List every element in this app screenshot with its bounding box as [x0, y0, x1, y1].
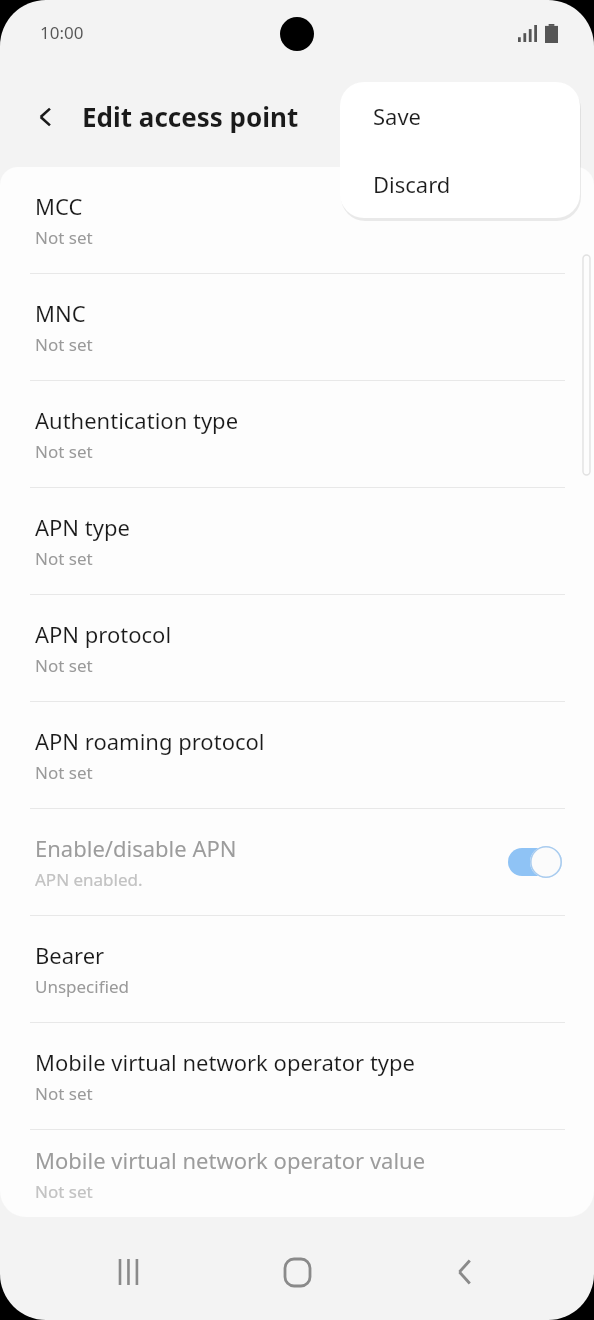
button[interactable]: Home	[259, 1234, 335, 1310]
staticText: MCC	[35, 191, 83, 221]
staticText: Not set	[35, 547, 93, 570]
button[interactable]: Authentication type	[0, 381, 594, 487]
button[interactable]: Back	[24, 95, 68, 139]
staticText: Not set	[35, 1180, 93, 1203]
staticText: APN type	[35, 512, 130, 542]
staticText: Bearer	[35, 940, 105, 970]
button[interactable]: APN type	[0, 488, 594, 594]
staticText: Mobile virtual network operator type	[35, 1047, 415, 1077]
staticText: MNC	[35, 298, 86, 328]
button[interactable]: Back	[427, 1234, 503, 1310]
button[interactable]: Mobile virtual network operator type	[0, 1023, 594, 1129]
staticText: Edit access point	[82, 99, 299, 134]
button[interactable]: Enable or disable APN	[508, 846, 562, 878]
staticText: Discard	[373, 169, 451, 199]
staticText: APN roaming protocol	[35, 726, 265, 756]
staticText: Not set	[35, 1082, 93, 1105]
button[interactable]: Bearer	[0, 916, 594, 1022]
button[interactable]: MCC	[0, 167, 594, 273]
staticText: Not set	[35, 226, 93, 249]
staticText: Not set	[35, 761, 93, 784]
staticText: Not set	[35, 333, 93, 356]
staticText: Not set	[35, 654, 93, 677]
staticText: Save	[373, 101, 422, 131]
button[interactable]: Mobile virtual network operator value	[0, 1130, 594, 1217]
staticText: Enable/disable APN	[35, 833, 237, 863]
staticText: 10:00	[40, 21, 84, 44]
staticText: Unspecified	[35, 975, 129, 998]
button[interactable]: Discard	[340, 150, 580, 218]
staticText: Authentication type	[35, 405, 239, 435]
button[interactable]: APN protocol	[0, 595, 594, 701]
button[interactable]: Enable/disable APN	[0, 809, 594, 915]
staticText: APN protocol	[35, 619, 172, 649]
button[interactable]: APN roaming protocol	[0, 702, 594, 808]
staticText: Not set	[35, 440, 93, 463]
button[interactable]: MNC	[0, 274, 594, 380]
staticText: Mobile virtual network operator value	[35, 1145, 426, 1175]
staticText: APN enabled.	[35, 868, 143, 891]
button[interactable]: Recents	[92, 1234, 168, 1310]
button[interactable]: Save	[340, 82, 580, 150]
